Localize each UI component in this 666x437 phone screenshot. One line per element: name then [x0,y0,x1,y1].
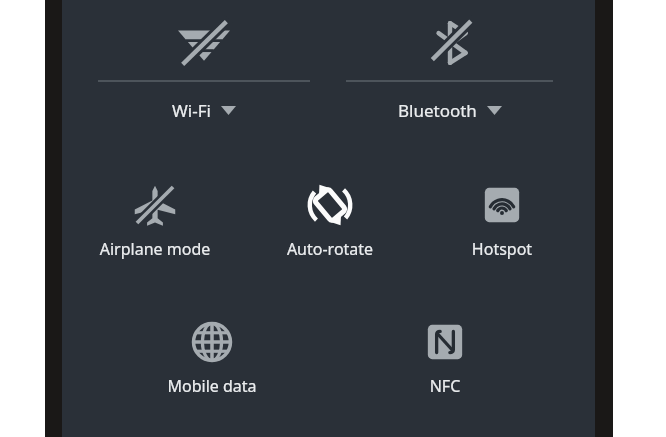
staticText: Mobile data [150,375,274,397]
staticText: Wi-Fi [172,99,211,122]
button[interactable]: NFC [383,309,507,397]
staticText: Airplane mode [93,238,217,260]
staticText: Auto-rotate [268,238,392,260]
staticText: Bluetooth [398,99,477,122]
button[interactable]: Wi-Fi [98,6,310,122]
staticText: NFC [383,375,507,397]
button[interactable]: Hotspot [440,172,564,260]
button[interactable]: Bluetooth [346,6,553,122]
staticText: Hotspot [440,238,564,260]
button[interactable]: Mobile data [150,309,274,397]
button[interactable]: Auto-rotate [268,172,392,260]
button[interactable]: Airplane mode [93,172,217,260]
